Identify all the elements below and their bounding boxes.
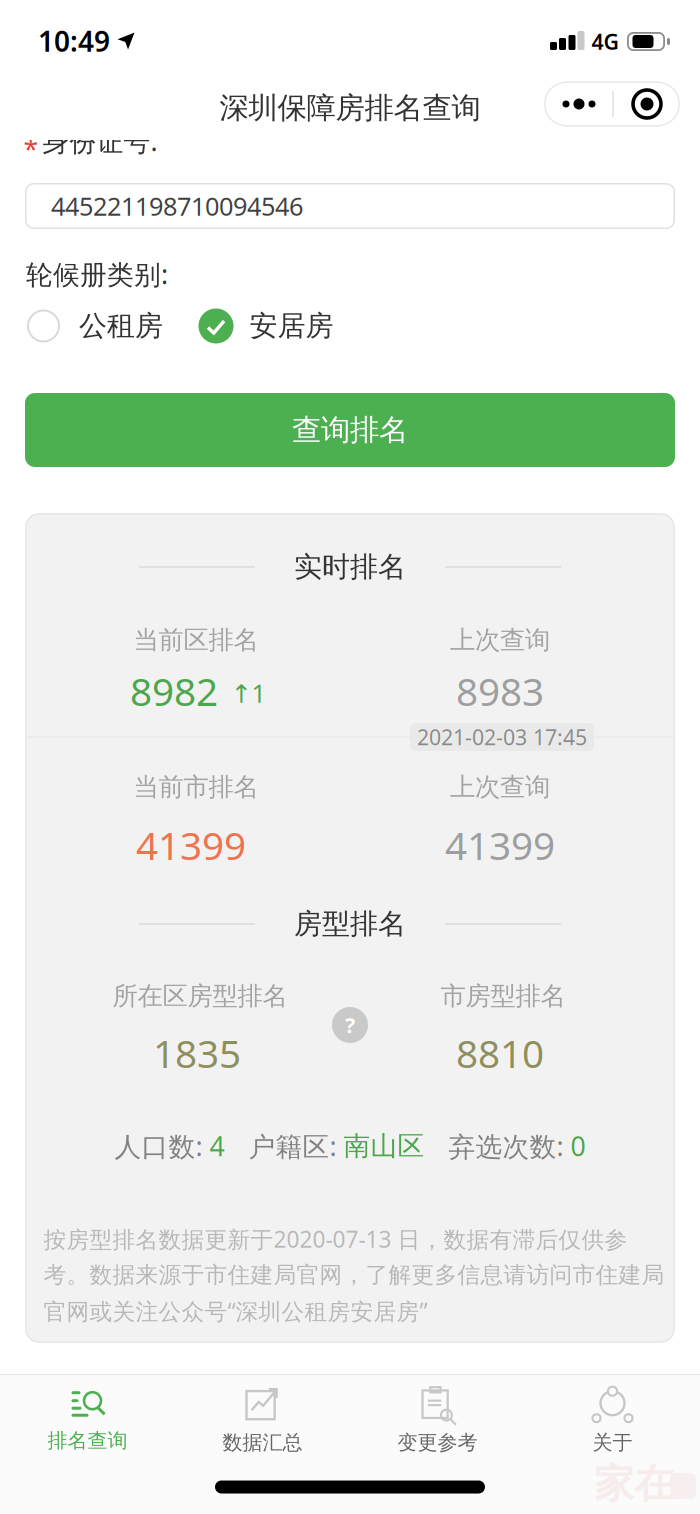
staticText: 上次查询 bbox=[450, 624, 550, 655]
button[interactable]: 说明 bbox=[332, 1007, 368, 1043]
staticText: 0 bbox=[570, 1128, 585, 1164]
staticText: 8983 bbox=[456, 665, 544, 717]
button[interactable]: 更多 bbox=[549, 81, 609, 126]
staticText: 10:49 bbox=[38, 22, 110, 60]
staticText: 4G bbox=[591, 27, 618, 56]
button[interactable]: 数据汇总 bbox=[175, 1376, 350, 1466]
staticText: 1835 bbox=[153, 1027, 241, 1079]
staticText: 41399 bbox=[136, 819, 246, 871]
staticText: 数据汇总 bbox=[222, 1430, 302, 1455]
staticText: 当前区排名 bbox=[133, 624, 258, 655]
staticText: ↑1 bbox=[230, 676, 265, 710]
staticText: 安居房 bbox=[249, 309, 333, 343]
staticText: 变更参考 bbox=[397, 1430, 477, 1455]
staticText: * bbox=[23, 131, 38, 167]
staticText: 深圳保障房排名查询 bbox=[219, 90, 480, 126]
staticText: 房型排名 bbox=[294, 907, 406, 941]
staticText: 南山区 bbox=[343, 1130, 424, 1162]
staticText: 41399 bbox=[445, 819, 555, 871]
staticText: 实时排名 bbox=[294, 550, 406, 584]
staticText: 4 bbox=[209, 1128, 224, 1164]
button[interactable]: 445221198710094546 bbox=[25, 183, 675, 229]
staticText: ? bbox=[345, 1011, 355, 1039]
button[interactable]: 关闭 bbox=[617, 81, 677, 126]
staticText: 官网或关注公众号“深圳公租房安居房” bbox=[43, 1296, 427, 1326]
staticText: 弃选次数: bbox=[424, 1128, 570, 1164]
staticText: 所在区房型排名 bbox=[112, 980, 287, 1011]
button[interactable]: 变更参考 bbox=[350, 1376, 525, 1466]
staticText: 当前市排名 bbox=[133, 771, 258, 802]
staticText: 户籍区: bbox=[224, 1128, 343, 1164]
staticText: 按房型排名数据更新于2020-07-13 日，数据有滞后仅供参 bbox=[43, 1224, 627, 1254]
staticText: 关于 bbox=[592, 1430, 632, 1455]
staticText: 市房型排名 bbox=[440, 980, 565, 1011]
staticText: 查询排名 bbox=[292, 412, 408, 448]
staticText: 家在 bbox=[594, 1459, 674, 1508]
staticText: 人口数: bbox=[114, 1128, 209, 1164]
staticText: 8982 bbox=[130, 665, 218, 717]
staticText: 上次查询 bbox=[450, 771, 550, 802]
button[interactable]: 排名查询 bbox=[0, 1376, 175, 1466]
button[interactable]: 安居房 bbox=[198, 308, 333, 343]
staticText: 排名查询 bbox=[47, 1428, 127, 1453]
staticText: 8810 bbox=[456, 1027, 544, 1079]
staticText: 身份证号: bbox=[42, 123, 157, 159]
staticText: 公租房 bbox=[79, 309, 163, 343]
staticText: 445221198710094546 bbox=[51, 189, 303, 223]
button[interactable]: 查询排名 bbox=[25, 393, 675, 467]
button[interactable]: 公租房 bbox=[27, 309, 163, 343]
staticText: 考。数据来源于市住建局官网，了解更多信息请访问市住建局 bbox=[43, 1261, 664, 1289]
button[interactable]: 关于 bbox=[525, 1376, 700, 1466]
staticText: 轮候册类别: bbox=[26, 256, 168, 292]
staticText: 2021-02-03 17:45 bbox=[417, 723, 587, 751]
